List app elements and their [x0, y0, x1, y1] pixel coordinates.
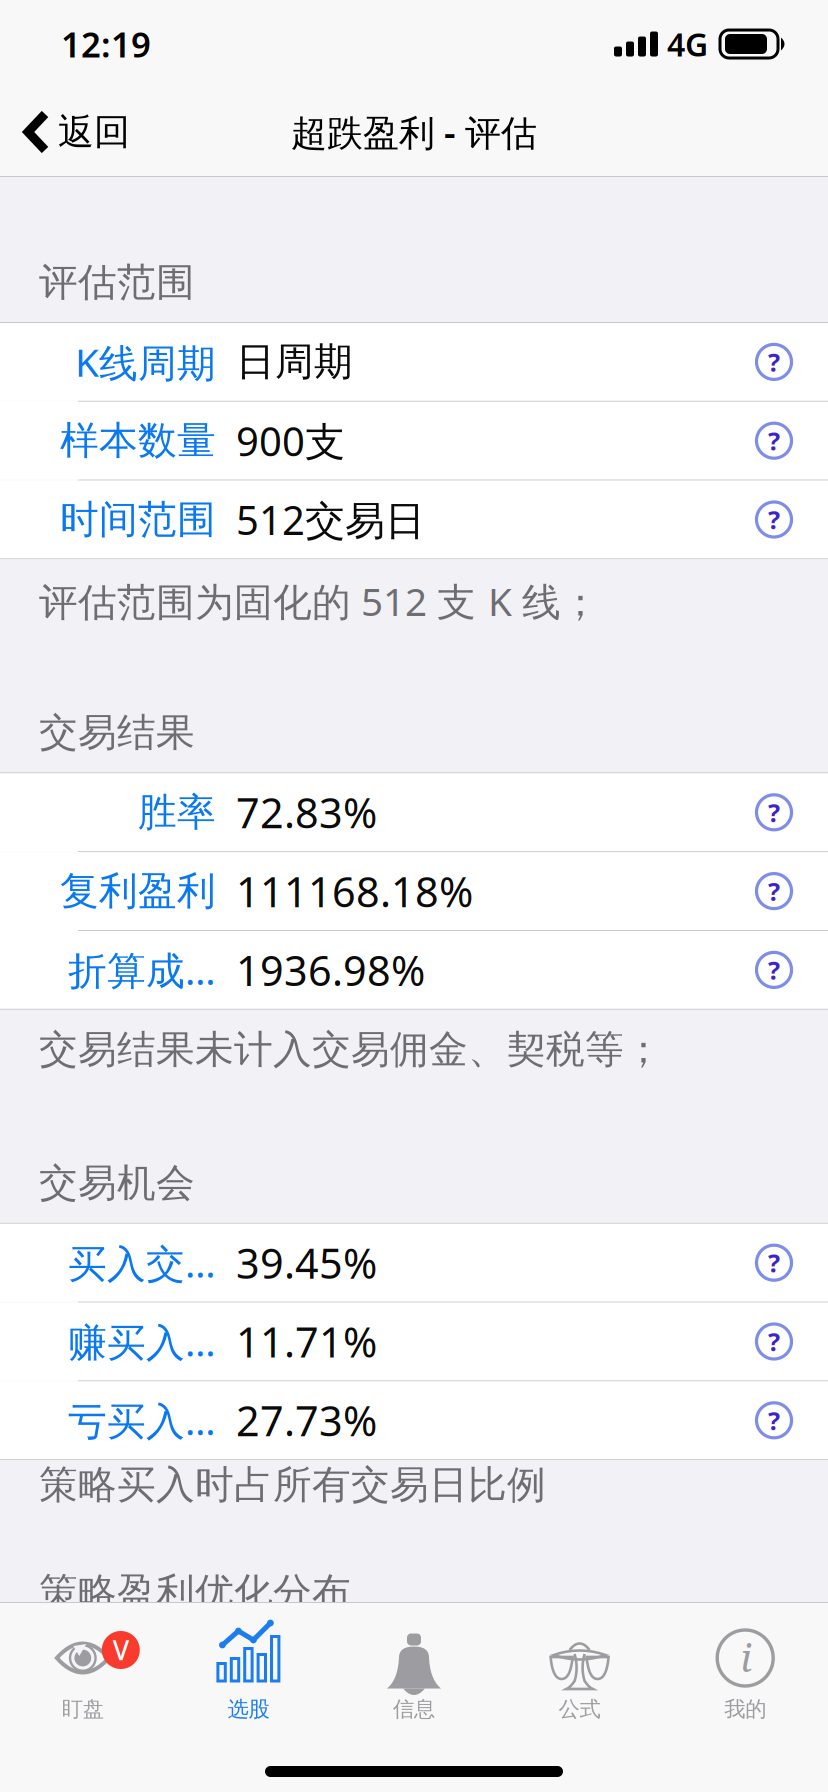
staticText: 赚买入…: [68, 1316, 216, 1367]
staticText: i: [740, 1631, 752, 1683]
button[interactable]: 选股: [166, 1603, 331, 1736]
staticText: 72.83%: [236, 785, 377, 840]
staticText: 111168.18%: [236, 864, 473, 919]
button[interactable]: V: [0, 1603, 166, 1736]
button[interactable]: i: [662, 1603, 828, 1736]
staticText: ?: [768, 1403, 780, 1437]
staticText: 交易机会: [39, 1159, 195, 1207]
staticText: K线周期: [75, 336, 216, 388]
button[interactable]: 胜率: [0, 773, 828, 851]
staticText: 39.45%: [236, 1235, 377, 1290]
staticText: ?: [768, 795, 780, 829]
button[interactable]: 买入交…: [0, 1224, 828, 1302]
staticText: V: [113, 1632, 129, 1668]
staticText: 胜率: [138, 789, 216, 836]
staticText: 亏买入…: [68, 1395, 216, 1446]
staticText: 27.73%: [236, 1393, 377, 1448]
button[interactable]: 复利盈利: [0, 852, 828, 930]
staticText: ?: [768, 874, 780, 908]
staticText: 时间范围: [60, 496, 216, 543]
button[interactable]: 亏买入…: [0, 1381, 828, 1459]
staticText: 900支: [236, 414, 345, 467]
staticText: 12:19: [61, 21, 151, 67]
staticText: ?: [768, 345, 780, 379]
staticText: 512交易日: [236, 493, 425, 546]
button[interactable]: 样本数量: [0, 402, 828, 480]
button[interactable]: 信息: [331, 1603, 497, 1736]
staticText: 公式: [559, 1696, 601, 1722]
staticText: ?: [768, 953, 780, 987]
button[interactable]: 赚买入…: [0, 1303, 828, 1380]
staticText: 复利盈利: [60, 867, 216, 915]
staticText: ?: [768, 503, 780, 536]
staticText: ?: [768, 424, 780, 457]
staticText: 返回: [58, 110, 130, 154]
staticText: 日周期: [236, 338, 353, 386]
staticText: ?: [768, 1325, 780, 1358]
button[interactable]: 返回: [0, 88, 144, 176]
staticText: 评估范围为固化的 512 支 K 线；: [39, 575, 600, 627]
staticText: 折算成…: [68, 944, 216, 995]
staticText: 策略买入时占所有交易日比例: [39, 1461, 546, 1509]
staticText: 我的: [724, 1696, 766, 1722]
button[interactable]: 公式: [497, 1603, 662, 1736]
staticText: 11.71%: [236, 1314, 377, 1369]
staticText: 信息: [393, 1696, 435, 1722]
staticText: 评估范围: [39, 258, 195, 306]
staticText: 交易结果未计入交易佣金、契税等；: [39, 1026, 663, 1073]
button[interactable]: K线周期: [0, 323, 828, 401]
button[interactable]: 折算成…: [0, 931, 828, 1009]
staticText: 样本数量: [60, 417, 216, 464]
staticText: 1936.98%: [236, 942, 425, 997]
staticText: 盯盘: [62, 1696, 104, 1722]
staticText: 买入交…: [68, 1237, 216, 1288]
staticText: 选股: [227, 1696, 269, 1722]
button[interactable]: 时间范围: [0, 481, 828, 558]
staticText: ?: [768, 1246, 780, 1279]
staticText: 超跌盈利 - 评估: [291, 108, 537, 156]
staticText: 交易结果: [39, 709, 195, 756]
staticText: 策略盈利优化分布: [39, 1569, 351, 1616]
staticText: 4G: [667, 23, 708, 65]
